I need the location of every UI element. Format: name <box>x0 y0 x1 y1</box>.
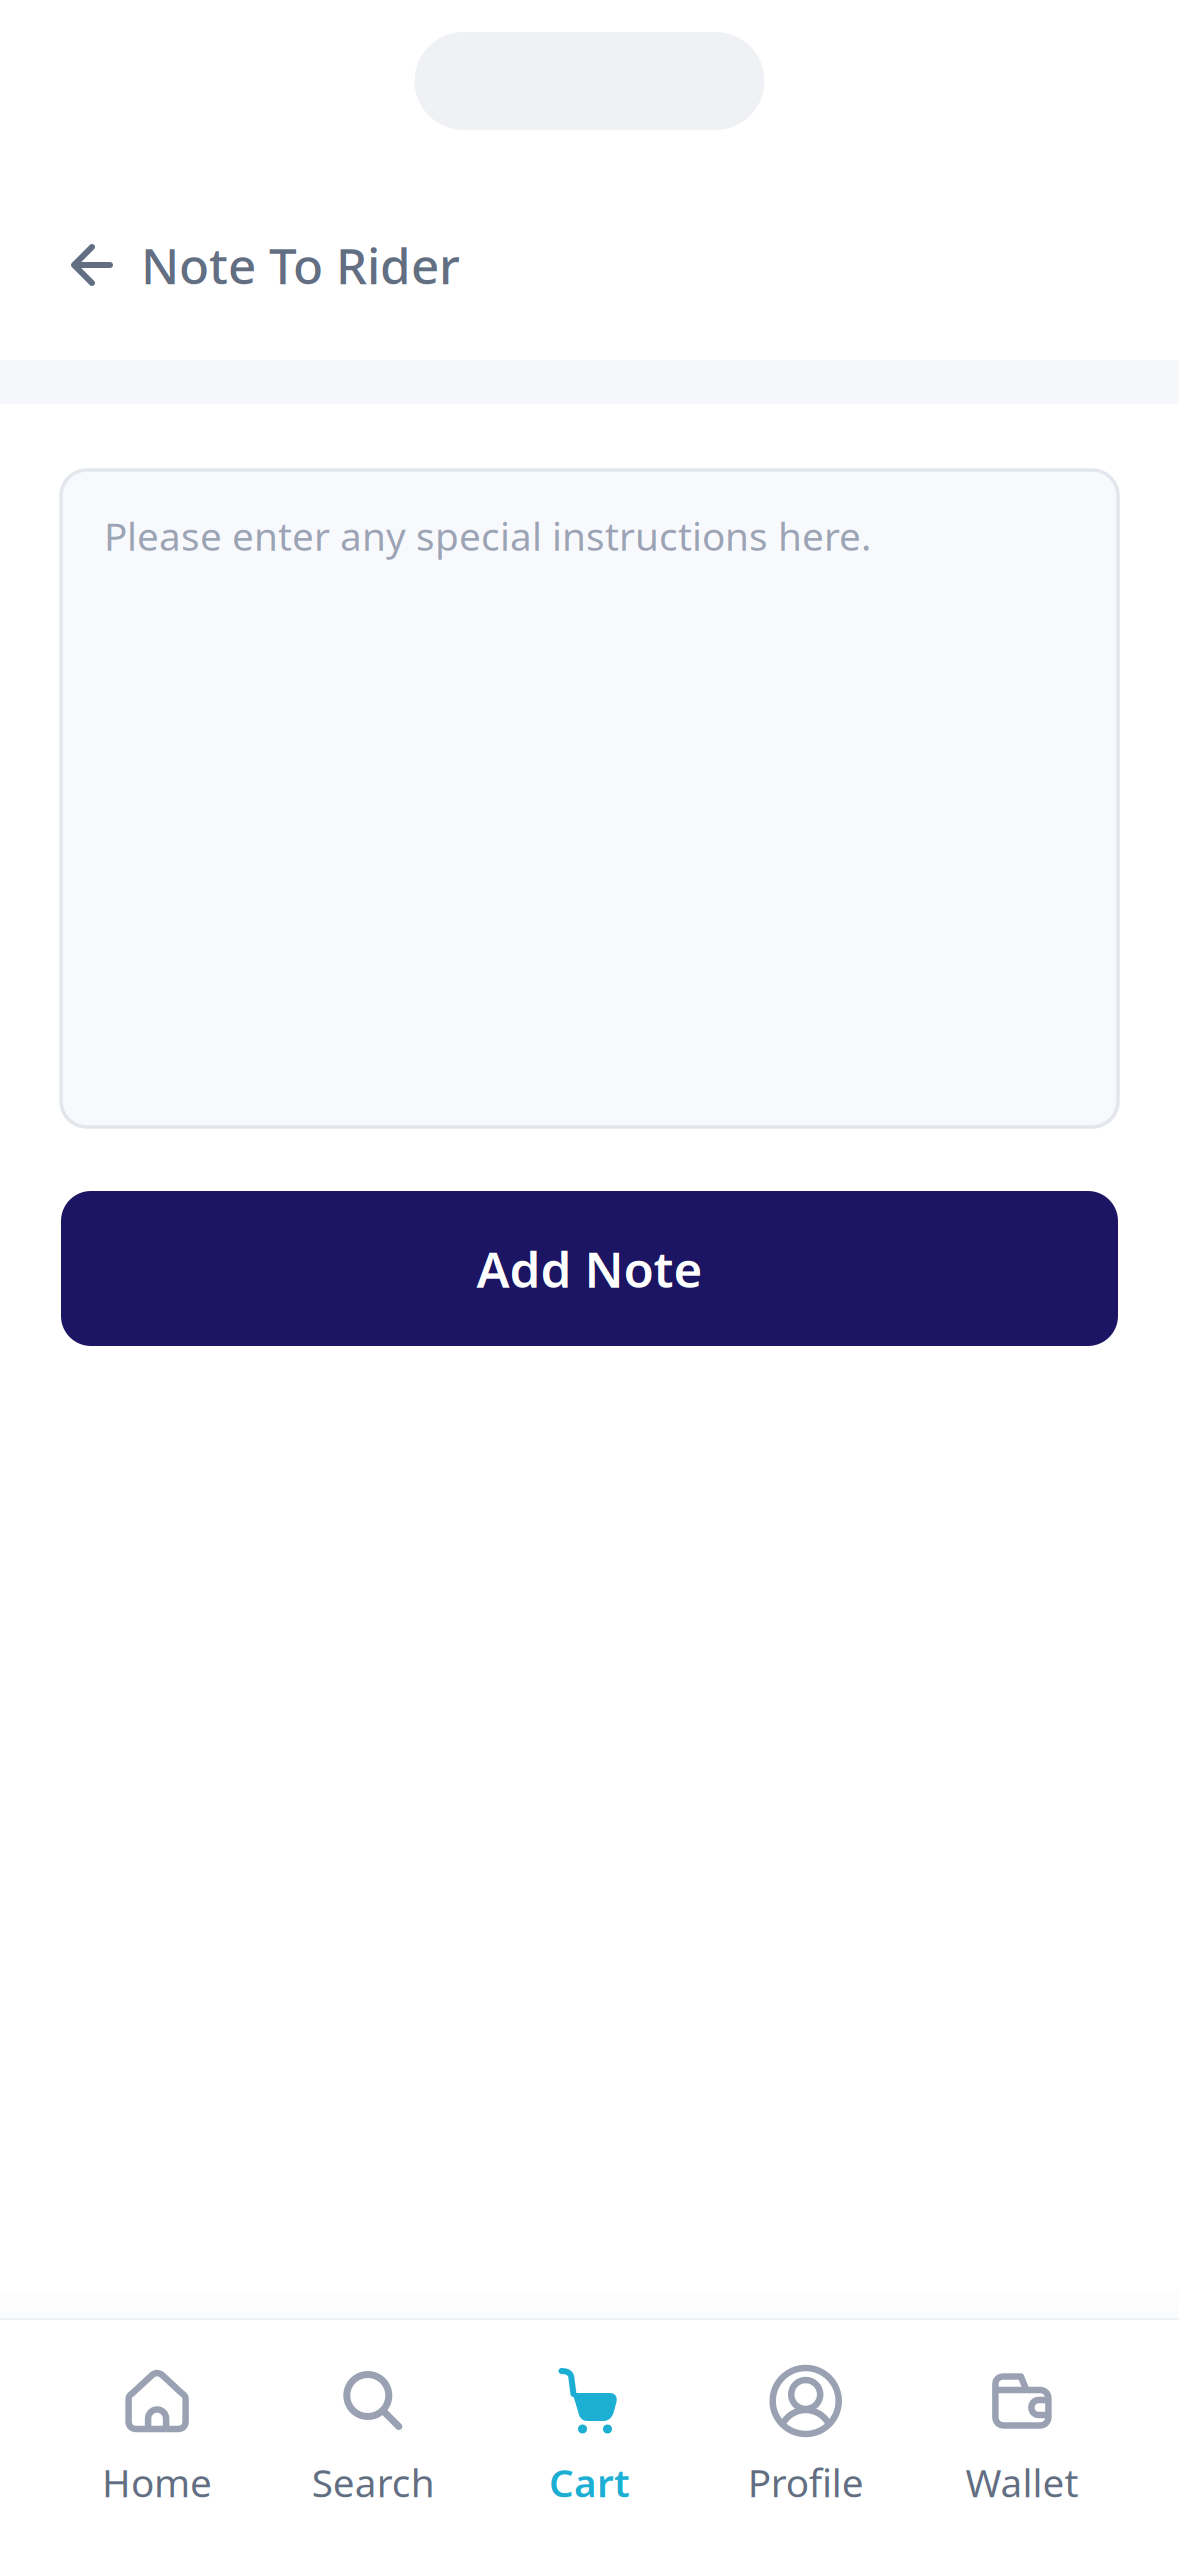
button[interactable]: Home <box>49 2365 265 2508</box>
staticText: Profile <box>748 2457 864 2508</box>
staticText: Home <box>102 2457 212 2508</box>
staticText: Please enter any special instructions he… <box>104 510 871 561</box>
button[interactable]: Wallet <box>914 2365 1130 2508</box>
staticText: Add Note <box>476 1236 702 1301</box>
staticText: Wallet <box>965 2457 1078 2508</box>
button[interactable]: Profile <box>698 2365 914 2508</box>
button[interactable]: Please enter any special instructions he… <box>61 470 1118 1127</box>
button[interactable]: Cart <box>481 2365 698 2508</box>
button[interactable]: Search <box>265 2365 481 2508</box>
staticText: Cart <box>549 2457 630 2508</box>
staticText: Note To Rider <box>141 232 460 298</box>
staticText: Search <box>312 2457 435 2508</box>
button[interactable]: Back <box>53 226 131 304</box>
button[interactable]: Add Note <box>61 1191 1118 1346</box>
